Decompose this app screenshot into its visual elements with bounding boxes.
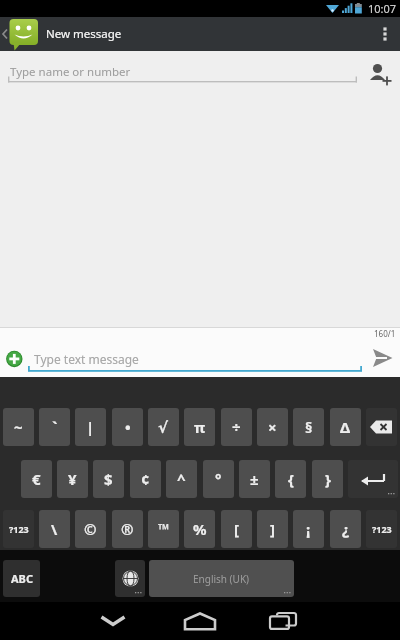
staticText: $ <box>104 469 113 489</box>
button[interactable]: ® <box>112 510 143 548</box>
button[interactable]: } <box>312 460 343 498</box>
staticText: © <box>84 519 97 539</box>
staticText: 10:07 <box>368 1 397 16</box>
button[interactable]: ?123 <box>3 510 34 548</box>
button[interactable]: | <box>75 408 106 446</box>
button[interactable]: Δ <box>330 408 361 446</box>
staticText: Type text message <box>34 351 139 367</box>
button[interactable]: % <box>184 510 215 548</box>
button[interactable]: ¢ <box>130 460 161 498</box>
staticText: } <box>325 469 331 489</box>
button[interactable]: Type name or number <box>0 51 400 90</box>
staticText: ?123 <box>9 523 29 535</box>
staticText: ± <box>250 469 259 489</box>
staticText: \ <box>51 519 58 539</box>
button[interactable]: ± <box>239 460 270 498</box>
staticText: € <box>32 469 41 489</box>
button[interactable]: ` <box>39 408 70 446</box>
button[interactable]: ÷ <box>221 408 252 446</box>
button[interactable]: € <box>21 460 52 498</box>
button[interactable]: ] <box>257 510 288 548</box>
button[interactable] <box>180 602 220 640</box>
button[interactable]: ¡ <box>293 510 324 548</box>
button[interactable]: ¥ <box>57 460 88 498</box>
button[interactable]: ~ <box>3 408 34 446</box>
button[interactable] <box>263 602 303 640</box>
button[interactable]: © <box>75 510 106 548</box>
staticText: ] <box>270 519 275 539</box>
button[interactable]: ABC <box>3 560 40 597</box>
button[interactable]: 160/1 <box>0 327 400 377</box>
staticText: English (UK) <box>193 572 250 586</box>
button[interactable]: English (UK) <box>149 560 294 597</box>
button[interactable]: ¿ <box>330 510 361 548</box>
button[interactable]: [ <box>221 510 252 548</box>
button[interactable]: ° <box>203 460 234 498</box>
staticText: ¢ <box>141 469 150 489</box>
button[interactable]: { <box>275 460 306 498</box>
staticText: Δ <box>340 417 351 437</box>
staticText: × <box>268 417 277 437</box>
staticText: { <box>288 469 294 489</box>
button[interactable] <box>115 560 145 597</box>
staticText: | <box>86 417 95 437</box>
button[interactable] <box>0 17 42 51</box>
staticText: √ <box>158 419 169 436</box>
staticText: ¡ <box>306 519 311 539</box>
staticText: ABC <box>11 571 33 586</box>
button[interactable]: • <box>112 408 143 446</box>
staticText: ÷ <box>232 417 241 437</box>
button[interactable]: ^ <box>166 460 197 498</box>
button[interactable] <box>348 460 398 498</box>
button[interactable] <box>366 408 397 446</box>
button[interactable]: \ <box>39 510 70 548</box>
staticText: 160/1 <box>374 328 396 339</box>
staticText: ° <box>215 469 222 489</box>
staticText: π <box>194 417 206 437</box>
button[interactable]: × <box>257 408 288 446</box>
staticText: ^ <box>177 469 186 489</box>
staticText: ® <box>121 519 134 539</box>
button[interactable]: √ <box>148 408 179 446</box>
staticText: • <box>125 417 131 437</box>
staticText: ~ <box>14 417 23 437</box>
staticText: New message <box>46 26 122 42</box>
staticText: ¥ <box>68 469 77 489</box>
button[interactable]: ?123 <box>366 510 397 548</box>
button[interactable]: $ <box>93 460 124 498</box>
staticText: ™ <box>158 519 170 539</box>
button[interactable] <box>370 17 400 51</box>
staticText: % <box>193 519 207 539</box>
button[interactable] <box>93 602 133 640</box>
button[interactable]: ™ <box>148 510 179 548</box>
staticText: ` <box>52 417 58 437</box>
staticText: ¿ <box>342 519 350 539</box>
button[interactable]: π <box>184 408 215 446</box>
staticText: § <box>305 417 313 437</box>
staticText: Type name or number <box>10 64 131 80</box>
staticText: [ <box>234 519 239 539</box>
button[interactable]: § <box>293 408 324 446</box>
staticText: ?123 <box>372 523 392 535</box>
